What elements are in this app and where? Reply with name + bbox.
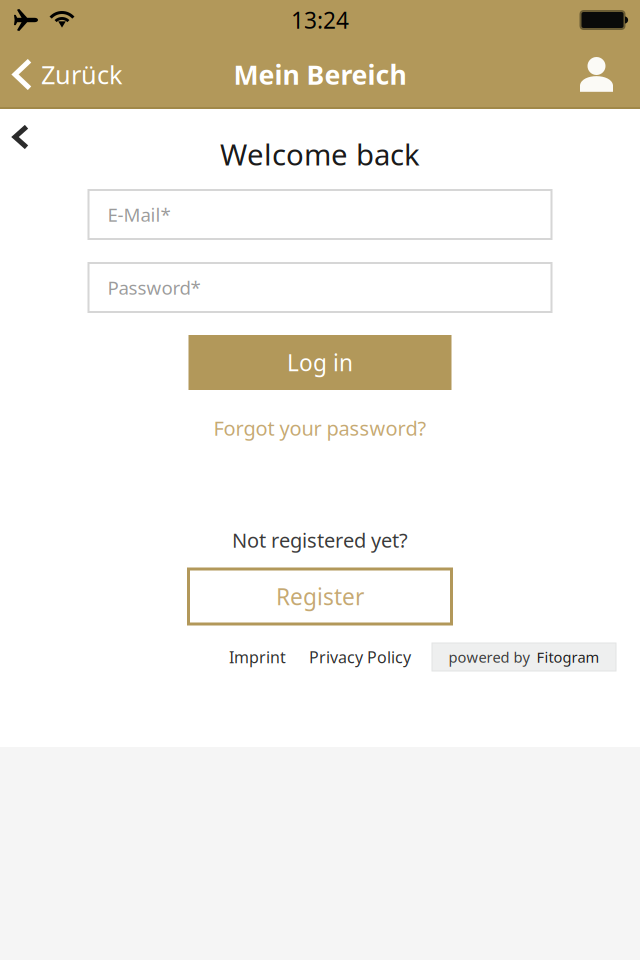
staticText: Welcome back bbox=[220, 134, 420, 173]
staticText: Forgot your password? bbox=[213, 415, 426, 441]
staticText: Log in bbox=[287, 347, 353, 377]
button[interactable]: E-Mail* bbox=[88, 190, 551, 239]
button[interactable]: powered by bbox=[432, 643, 616, 671]
staticText: Imprint bbox=[229, 646, 286, 668]
button[interactable]: Back bbox=[0, 131, 45, 177]
button[interactable]: Imprint bbox=[229, 643, 286, 671]
button[interactable]: Log in bbox=[188, 335, 451, 390]
staticText: Not registered yet? bbox=[232, 527, 408, 553]
button[interactable]: Profile bbox=[560, 40, 640, 109]
staticText: E-Mail* bbox=[107, 202, 170, 227]
staticText: 13:24 bbox=[291, 5, 349, 35]
button[interactable]: Zurück bbox=[0, 40, 137, 109]
button[interactable]: Password* bbox=[88, 263, 551, 312]
staticText: Password* bbox=[107, 275, 200, 300]
staticText: Register bbox=[276, 581, 364, 611]
button[interactable]: Forgot your password? bbox=[189, 416, 450, 440]
staticText: powered by bbox=[448, 647, 529, 667]
staticText: Privacy Policy bbox=[309, 646, 411, 668]
staticText: Mein Bereich bbox=[233, 57, 406, 92]
button[interactable]: Register bbox=[188, 569, 451, 624]
button[interactable]: Privacy Policy bbox=[309, 643, 411, 671]
staticText: Fitogram bbox=[536, 647, 599, 667]
staticText: Zurück bbox=[41, 58, 123, 91]
